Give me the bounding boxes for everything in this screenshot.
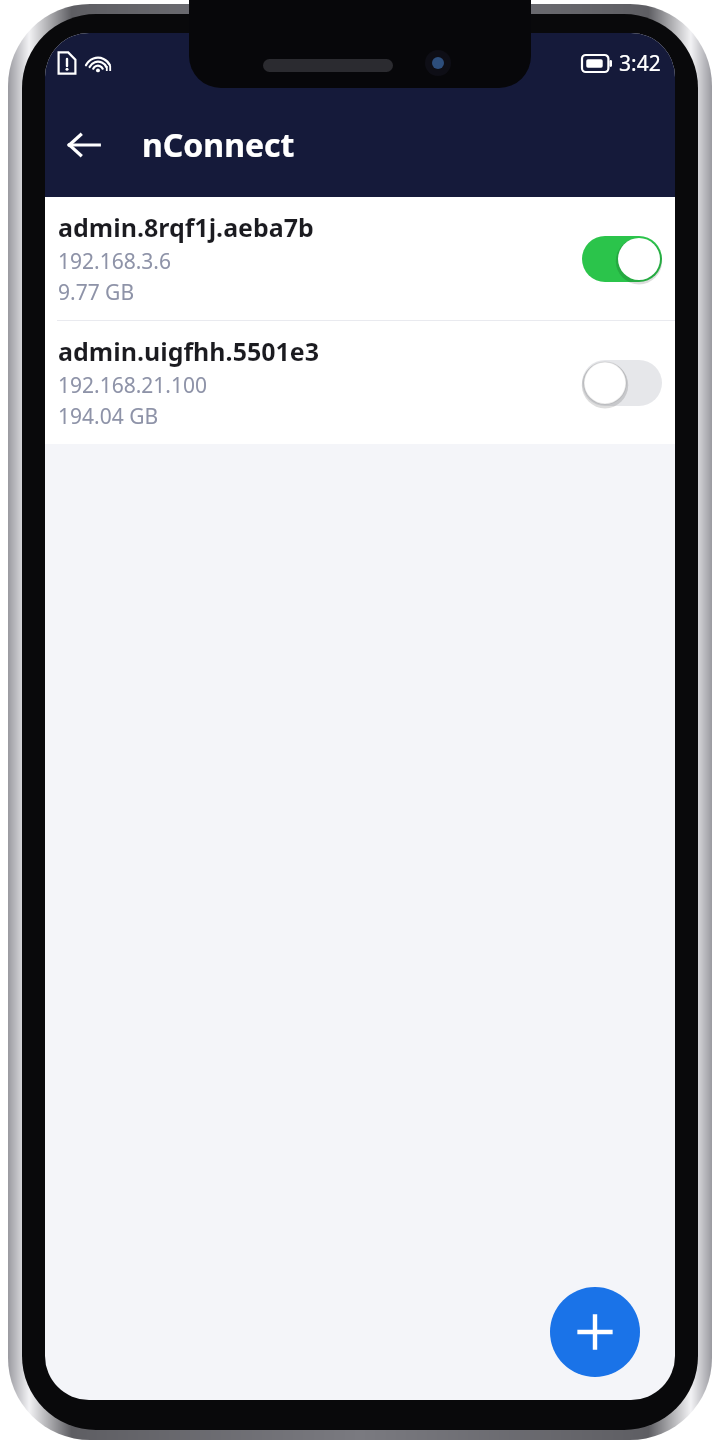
staticText: admin.8rqf1j.aeba7b [58,210,314,244]
button[interactable]: Back [53,114,115,176]
staticText: 3:42 [619,49,661,78]
staticText: 9.77 GB [58,278,135,307]
button[interactable]: admin.uigfhh.5501e3 [45,321,675,444]
staticText: 192.168.3.6 [58,247,171,276]
staticText: 192.168.21.100 [58,371,208,400]
staticText: nConnect [142,123,295,167]
button[interactable]: Add device [550,1287,640,1377]
button[interactable]: Connected, on [582,231,662,287]
button[interactable]: admin.8rqf1j.aeba7b [45,197,675,320]
button[interactable]: Disconnected, off [582,355,662,411]
staticText: 194.04 GB [58,402,159,431]
staticText: admin.uigfhh.5501e3 [58,334,320,368]
